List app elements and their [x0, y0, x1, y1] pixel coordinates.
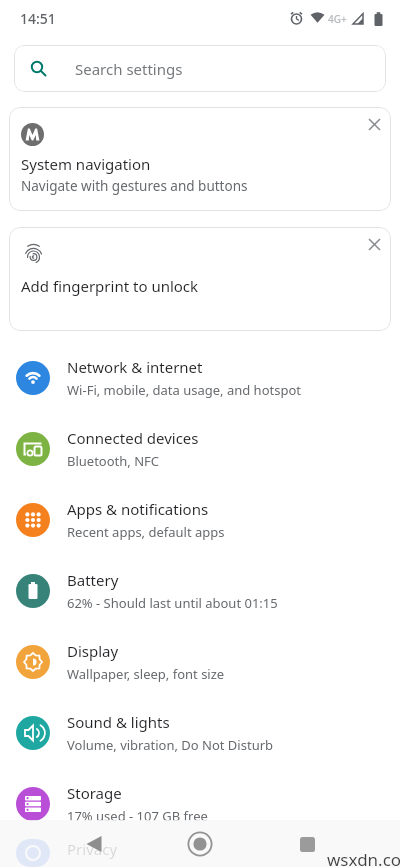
- button[interactable]: Connected devices: [0, 413, 400, 484]
- button[interactable]: [71, 821, 117, 867]
- button[interactable]: [357, 107, 391, 141]
- staticText: wsxdn.com: [327, 848, 400, 867]
- staticText: Privacy: [67, 839, 118, 859]
- staticText: Search settings: [75, 59, 183, 79]
- staticText: Storage: [67, 783, 122, 803]
- button[interactable]: System navigation: [9, 107, 391, 211]
- staticText: Wallpaper, sleep, font size: [67, 665, 225, 683]
- button[interactable]: Storage: [0, 768, 400, 839]
- staticText: Connected devices: [67, 428, 199, 448]
- button[interactable]: Network & internet: [0, 342, 400, 413]
- staticText: Sound & lights: [67, 712, 170, 732]
- button[interactable]: Battery: [0, 555, 400, 626]
- staticText: Battery: [67, 570, 119, 590]
- staticText: 62% - Should last until about 01:15: [67, 594, 278, 612]
- staticText: 14:51: [20, 9, 56, 28]
- button[interactable]: [284, 821, 330, 867]
- staticText: Apps & notifications: [67, 499, 209, 519]
- staticText: Wi-Fi, mobile, data usage, and hotspot: [67, 381, 301, 399]
- staticText: Display: [67, 641, 119, 661]
- staticText: Bluetooth, NFC: [67, 452, 160, 470]
- staticText: Volume, vibration, Do Not Disturb: [67, 736, 274, 754]
- staticText: Network & internet: [67, 357, 203, 377]
- button[interactable]: Add fingerprint to unlock: [9, 227, 391, 331]
- button[interactable]: [357, 227, 391, 261]
- staticText: 17% used - 107 GB free: [67, 807, 208, 825]
- staticText: 4G+: [328, 12, 347, 26]
- staticText: Navigate with gestures and buttons: [21, 177, 248, 195]
- staticText: Add fingerprint to unlock: [21, 276, 199, 296]
- button[interactable]: Privacy: [0, 839, 400, 867]
- button[interactable]: Sound & lights: [0, 697, 400, 768]
- button[interactable]: Apps & notifications: [0, 484, 400, 555]
- button[interactable]: Display: [0, 626, 400, 697]
- button[interactable]: [177, 821, 223, 867]
- button[interactable]: Search settings: [14, 45, 386, 92]
- staticText: System navigation: [21, 154, 151, 174]
- staticText: Recent apps, default apps: [67, 523, 225, 541]
